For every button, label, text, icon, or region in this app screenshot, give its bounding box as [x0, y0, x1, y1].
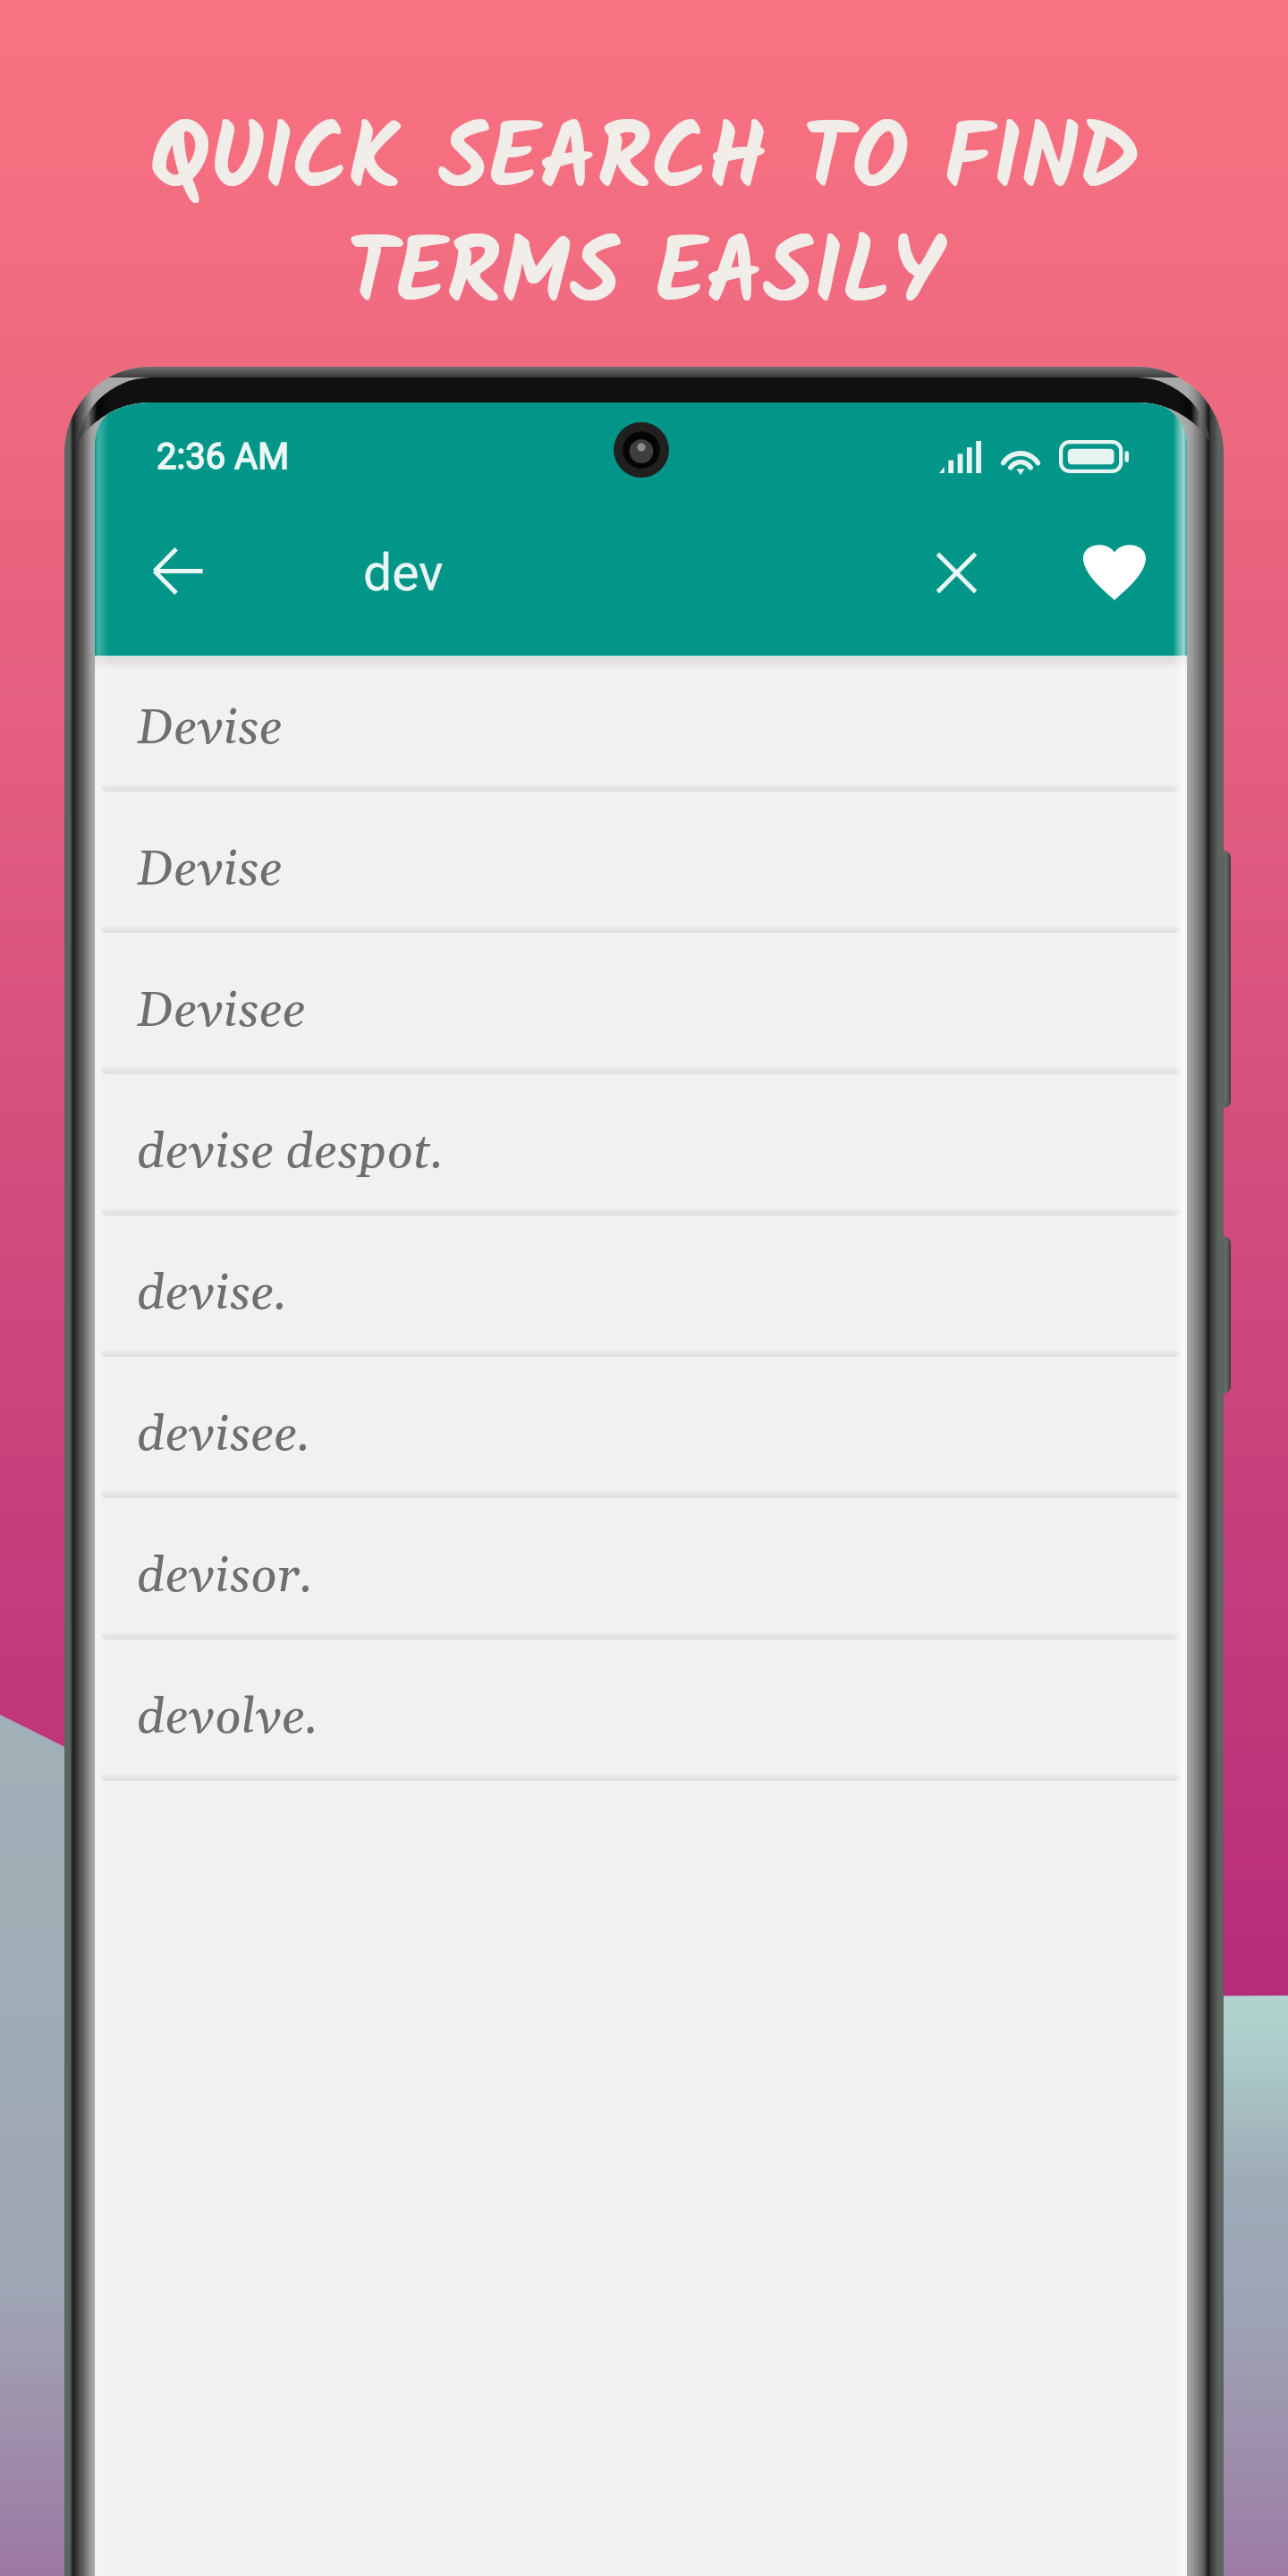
button[interactable]: Clear search — [907, 523, 1005, 622]
staticText: 2:36 AM — [157, 436, 290, 478]
staticText: dev — [363, 543, 444, 603]
staticText: devisor. — [137, 1546, 313, 1608]
staticText: devise. — [137, 1263, 288, 1326]
button[interactable]: Devisee — [101, 952, 1181, 1074]
button[interactable]: devise despot. — [101, 1093, 1181, 1216]
staticText: devolve. — [137, 1687, 318, 1750]
button[interactable]: dev — [336, 521, 837, 624]
staticText: devisee. — [137, 1404, 310, 1467]
button[interactable]: Devise — [101, 669, 1181, 792]
button[interactable]: devise. — [101, 1234, 1181, 1357]
button[interactable]: Devise — [101, 810, 1181, 933]
staticText: Devise — [137, 839, 283, 902]
button[interactable]: Back — [135, 528, 221, 614]
button[interactable]: Favourite — [1065, 521, 1164, 619]
staticText: devise despot. — [137, 1122, 444, 1184]
button[interactable]: devisor. — [101, 1517, 1181, 1640]
button[interactable]: devisee. — [101, 1376, 1181, 1498]
staticText: Devise — [137, 698, 283, 760]
staticText: Devisee — [137, 980, 306, 1043]
button[interactable]: devolve. — [101, 1658, 1181, 1781]
staticText: QUICK SEARCH TO FIND TERMS EASILY — [149, 90, 1140, 351]
